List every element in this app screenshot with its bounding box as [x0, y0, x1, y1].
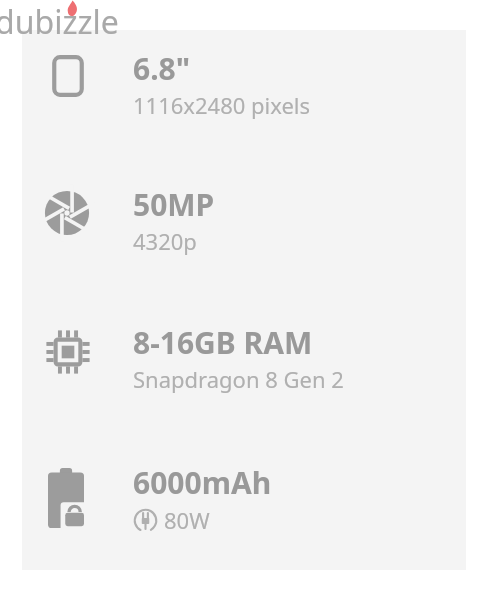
- staticText: 6000mAh: [133, 462, 272, 503]
- other: Battery capacity: [48, 468, 84, 528]
- staticText: Snapdragon 8 Gen 2: [133, 364, 344, 394]
- button[interactable]: Battery capacity: [30, 460, 450, 552]
- other: Camera resolution: [44, 190, 90, 236]
- staticText: 4320p: [133, 226, 197, 256]
- staticText: 50MP: [133, 184, 215, 225]
- staticText: 80W: [164, 505, 210, 535]
- other: Display size: [46, 54, 90, 98]
- button[interactable]: Memory and chipset: [30, 322, 450, 410]
- other: Memory and chipset: [44, 328, 92, 376]
- staticText: 6.8": [133, 48, 191, 89]
- staticText: dubizzle: [0, 0, 119, 44]
- staticText: 1116x2480 pixels: [133, 90, 311, 120]
- button[interactable]: Display size: [30, 48, 450, 136]
- button[interactable]: Camera resolution: [30, 184, 450, 272]
- staticText: 8-16GB RAM: [133, 322, 313, 363]
